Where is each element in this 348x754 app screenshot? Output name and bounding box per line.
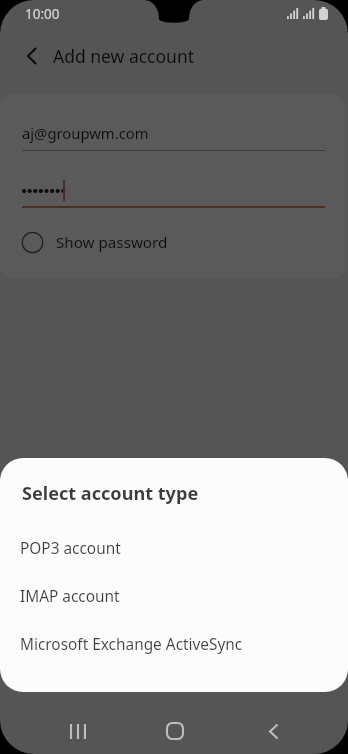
button[interactable]: Navigate up bbox=[12, 36, 52, 76]
staticText: Microsoft Exchange ActiveSync bbox=[20, 634, 243, 655]
staticText: Select account type bbox=[22, 481, 199, 506]
button[interactable]: Show password bbox=[20, 225, 168, 259]
staticText: POP3 account bbox=[20, 538, 121, 559]
staticText: aj@groupwm.com bbox=[22, 123, 149, 143]
staticText: 10:00 bbox=[25, 5, 60, 23]
staticText: IMAP account bbox=[20, 586, 120, 607]
button[interactable]: POP3 account bbox=[0, 524, 348, 572]
button[interactable]: Recent apps bbox=[55, 709, 100, 753]
button[interactable]: Microsoft Exchange ActiveSync bbox=[0, 620, 348, 668]
button[interactable]: IMAP account bbox=[0, 572, 348, 620]
staticText: Show password bbox=[56, 232, 168, 253]
staticText: Add new account bbox=[53, 44, 195, 68]
button[interactable]: Home bbox=[152, 709, 198, 753]
button[interactable]: Back bbox=[250, 709, 296, 753]
